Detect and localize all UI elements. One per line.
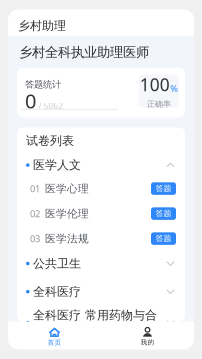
staticText: 乡村助理 xyxy=(18,18,66,33)
staticText: 答题 xyxy=(155,234,171,243)
staticText: 我的 xyxy=(140,338,154,346)
staticText: 医学伦理 xyxy=(45,207,89,220)
staticText: 02 xyxy=(30,207,40,220)
staticText: 全科医疗 xyxy=(33,284,81,299)
button[interactable]: 首页 xyxy=(8,321,101,349)
staticText: 首页 xyxy=(47,338,61,347)
staticText: 医学法规 xyxy=(45,232,89,245)
staticText: 100 xyxy=(140,73,170,96)
button[interactable]: 03 xyxy=(17,226,185,251)
staticText: 01 xyxy=(30,182,40,195)
button[interactable]: 02 xyxy=(17,201,185,226)
button[interactable]: 医学人文 xyxy=(17,154,185,176)
staticText: 答题统计 xyxy=(25,79,61,90)
button[interactable]: 我的 xyxy=(101,321,194,349)
staticText: 全科医疗 常用药物与合理用药 xyxy=(33,308,157,337)
staticText: 试卷列表 xyxy=(26,133,74,148)
staticText: 公共卫生 xyxy=(33,256,81,271)
staticText: 正确率 xyxy=(147,99,171,109)
staticText: 乡村全科执业助理医师 xyxy=(19,44,149,60)
staticText: 0 xyxy=(25,87,36,114)
button[interactable]: 全科医疗 xyxy=(17,276,185,307)
staticText: 答题 xyxy=(155,184,171,193)
button[interactable]: 01 xyxy=(17,176,185,201)
button[interactable]: 公共卫生 xyxy=(17,251,185,276)
staticText: 医学心理 xyxy=(45,182,89,195)
staticText: 医学人文 xyxy=(33,158,81,172)
staticText: 03 xyxy=(30,232,40,245)
staticText: % xyxy=(170,82,178,95)
button[interactable]: 全科医疗 常用药物与合理用药 xyxy=(17,307,185,338)
staticText: 答题 xyxy=(155,209,171,218)
staticText: / 5062 xyxy=(38,101,63,112)
